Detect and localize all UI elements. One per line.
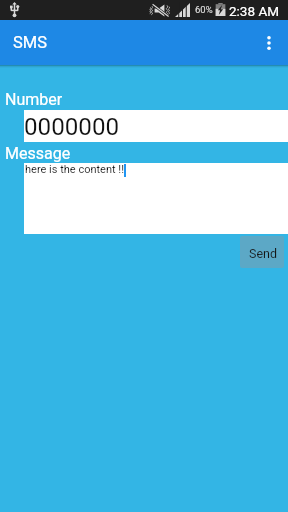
staticText: Send (249, 246, 278, 261)
button[interactable]: 0000000 (24, 110, 288, 142)
staticText: 0000000 (24, 113, 120, 141)
staticText: Number (5, 90, 63, 109)
button[interactable]: More options (250, 20, 288, 65)
staticText: SMS (13, 33, 47, 52)
staticText: Message (5, 144, 71, 163)
staticText: here is the content !! (25, 163, 124, 176)
staticText: 60% (195, 4, 213, 15)
button[interactable]: Send (240, 236, 284, 268)
button[interactable]: here is the content !! (24, 163, 288, 234)
staticText: 2:38 AM (229, 3, 279, 19)
